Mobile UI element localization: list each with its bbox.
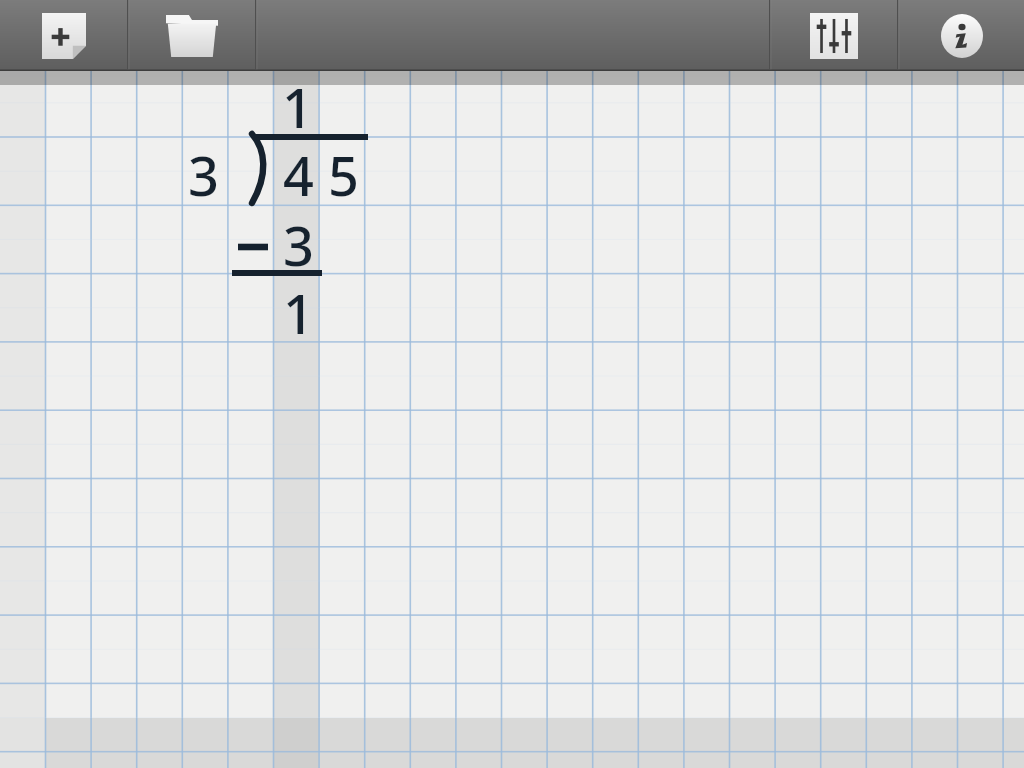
button[interactable]: Info [922, 12, 1002, 60]
button[interactable]: 1 [0, 71, 1024, 768]
staticText: 4 [283, 138, 314, 212]
staticText: 3 [188, 138, 219, 212]
staticText: 1 [283, 276, 314, 350]
button[interactable]: Open folder [152, 12, 232, 60]
staticText: 3 [283, 208, 314, 282]
button[interactable]: New document [24, 12, 104, 60]
button[interactable]: Settings [794, 12, 874, 60]
staticText: 1 [282, 70, 313, 144]
staticText: 5 [328, 138, 359, 212]
